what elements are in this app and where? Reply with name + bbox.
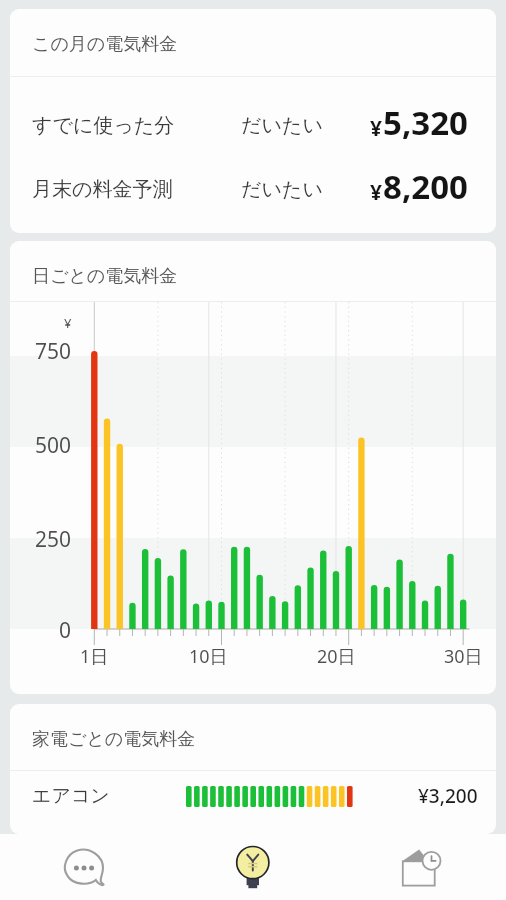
button[interactable]: Chat	[0, 834, 168, 900]
staticText: すでに使った分	[32, 113, 175, 138]
button[interactable]: エアコン	[10, 771, 496, 821]
staticText: 月末の料金予測	[32, 177, 173, 202]
staticText: エアコン	[32, 784, 110, 808]
staticText: ¥3,200	[418, 783, 478, 809]
staticText: ¥	[370, 114, 383, 143]
staticText: 30日	[444, 644, 483, 669]
staticText: 500	[35, 431, 72, 460]
staticText: 日ごとの電気料金	[32, 265, 178, 288]
staticText: ¥	[370, 178, 383, 207]
staticText: だいたい	[241, 113, 323, 138]
staticText: 1日	[80, 644, 109, 669]
staticText: ¥	[64, 314, 72, 332]
staticText: 5,320	[383, 100, 468, 144]
staticText: 10日	[189, 644, 228, 669]
staticText: 0	[59, 616, 72, 645]
staticText: 家電ごとの電気料金	[32, 728, 196, 751]
staticText: 250	[35, 525, 72, 554]
staticText: 750	[35, 337, 72, 366]
button[interactable]: Usage history	[337, 834, 506, 900]
staticText: だいたい	[241, 177, 323, 202]
button[interactable]: Electricity cost	[168, 834, 337, 900]
staticText: この月の電気料金	[32, 33, 178, 56]
staticText: 20日	[317, 644, 356, 669]
staticText: 8,200	[383, 164, 468, 208]
